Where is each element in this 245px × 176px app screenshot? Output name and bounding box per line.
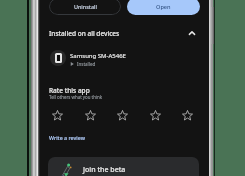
staticText: Write a review [49, 134, 85, 141]
button[interactable]: Rate 4 star [148, 108, 162, 122]
button[interactable]: Rate 2 star [83, 108, 97, 122]
staticText: Uninstall [74, 3, 97, 10]
button[interactable]: Rate 3 star [115, 108, 129, 122]
button[interactable]: Join the beta [48, 157, 199, 176]
staticText: Installed on all devices [49, 29, 120, 38]
button[interactable]: Write a review [49, 134, 85, 141]
button[interactable]: Samsung SM-A546E [48, 48, 200, 68]
staticText: Samsung SM-A546E [70, 52, 126, 60]
staticText: Tell others what you think [49, 94, 103, 100]
button[interactable]: Open [127, 0, 200, 15]
button[interactable]: Rate 5 star [180, 108, 194, 122]
staticText: Join the beta [83, 165, 126, 175]
button[interactable]: Installed on all devices [49, 28, 195, 38]
staticText: Rate this app [49, 86, 90, 95]
staticText: Open [156, 3, 171, 11]
button[interactable]: Uninstall [49, 0, 121, 15]
button[interactable]: Rate 1 star [50, 108, 64, 122]
staticText: Installed [77, 61, 96, 67]
